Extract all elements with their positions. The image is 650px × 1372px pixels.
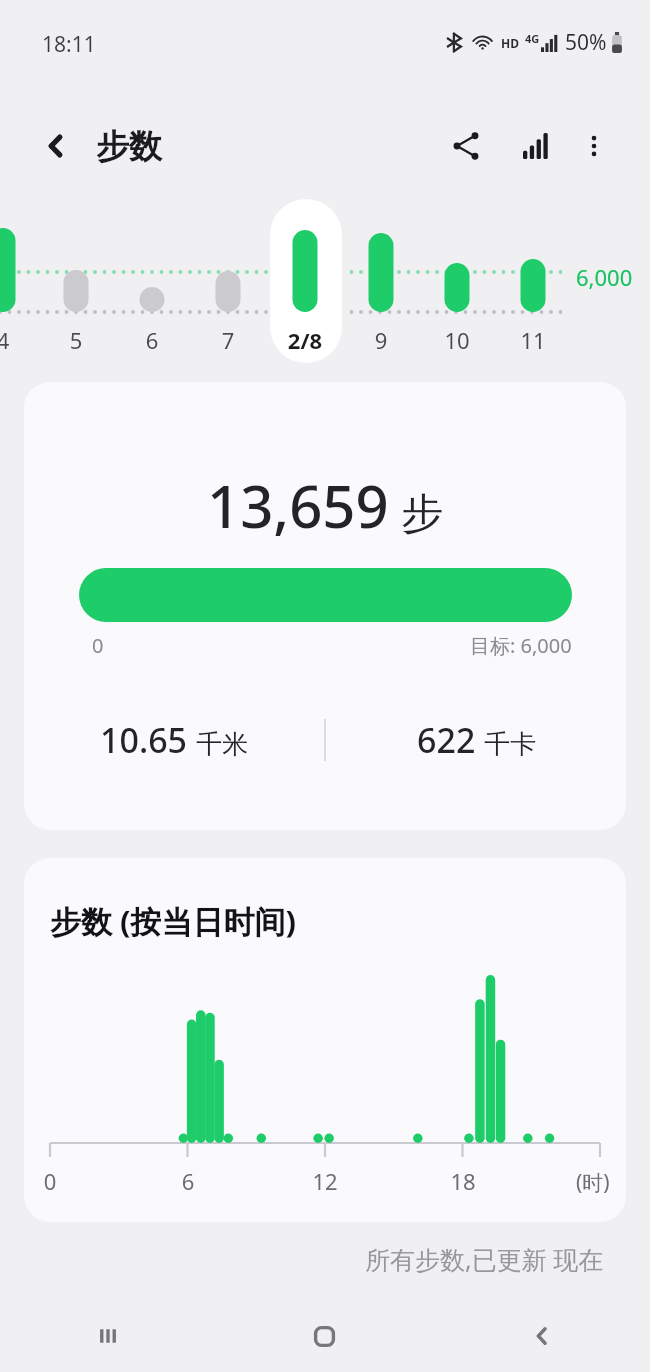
staticText: 目标: 6,000: [470, 632, 572, 659]
staticText: 50%: [565, 28, 607, 57]
staticText: 6: [122, 325, 182, 355]
button[interactable]: 13,659: [24, 382, 626, 830]
button[interactable]: Back: [30, 120, 82, 172]
button[interactable]: More options: [566, 118, 622, 174]
staticText: 步数 (按当日时间): [50, 900, 297, 942]
button[interactable]: Trends: [508, 118, 564, 174]
staticText: 10: [427, 325, 487, 355]
staticText: 11: [503, 325, 563, 355]
staticText: 所有步数,已更新 现在: [365, 1242, 604, 1276]
staticText: 6: [163, 1166, 213, 1196]
staticText: 6,000: [576, 262, 633, 292]
button[interactable]: Recents: [0, 1300, 216, 1372]
staticText: 2/8: [275, 325, 335, 355]
staticText: (时): [576, 1168, 610, 1197]
staticText: 步数: [96, 126, 162, 168]
staticText: 4: [0, 325, 33, 355]
staticText: 13,659: [207, 466, 389, 545]
staticText: HD: [501, 35, 519, 51]
button[interactable]: Back: [433, 1300, 650, 1372]
staticText: 10.65: [100, 717, 188, 763]
staticText: 千米: [196, 728, 248, 761]
staticText: 12: [300, 1166, 350, 1196]
button[interactable]: 步数 (按当日时间): [24, 858, 626, 1222]
button[interactable]: Home: [216, 1300, 433, 1372]
button[interactable]: [270, 199, 342, 363]
staticText: 7: [198, 325, 258, 355]
staticText: 步: [401, 488, 443, 541]
staticText: 18: [438, 1166, 488, 1196]
staticText: 千卡: [484, 728, 536, 761]
staticText: 9: [351, 325, 411, 355]
staticText: 18:11: [42, 30, 96, 59]
staticText: 5: [46, 325, 106, 355]
staticText: 0: [92, 632, 104, 659]
staticText: 4G: [525, 31, 540, 46]
staticText: 622: [417, 717, 476, 763]
button[interactable]: Share: [438, 118, 494, 174]
staticText: 0: [25, 1166, 75, 1196]
